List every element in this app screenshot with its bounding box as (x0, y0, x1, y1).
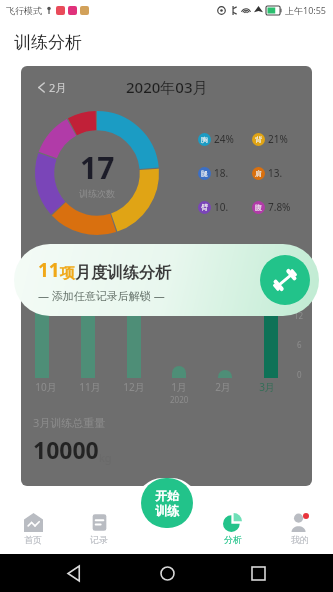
button[interactable]: 11 (14, 244, 319, 316)
button[interactable] (81, 280, 95, 378)
button[interactable]: 2月 (33, 76, 71, 99)
staticText: 臂 (201, 203, 208, 212)
staticText: 2月 (215, 380, 231, 394)
staticText: 2月 (49, 80, 67, 95)
staticText: 10. (214, 200, 229, 214)
button[interactable]: 开始训练 (260, 255, 310, 305)
staticText: 0 (297, 369, 302, 380)
staticText: 项 (60, 264, 75, 283)
button[interactable] (218, 370, 232, 378)
staticText: 胸 (201, 135, 208, 144)
button[interactable]: Back (58, 556, 92, 590)
button[interactable]: 首页 (0, 504, 66, 554)
staticText: 7.8% (268, 200, 291, 214)
button[interactable]: 我的 (266, 504, 333, 554)
staticText: 17 (80, 147, 115, 188)
staticText: 18 (294, 280, 304, 291)
button[interactable]: 开始 (141, 478, 193, 528)
staticText: 肩 (255, 169, 262, 178)
staticText: 6 (297, 339, 302, 350)
staticText: 腹 (255, 203, 262, 212)
button[interactable]: 记录 (66, 504, 132, 554)
staticText: 腿 (201, 169, 208, 178)
staticText: — 添加任意记录后解锁 — (38, 288, 165, 303)
staticText: 10000 (33, 434, 99, 465)
button[interactable]: Home (150, 556, 184, 590)
staticText: 分析 (224, 534, 242, 545)
staticText: 18. (214, 166, 229, 180)
button[interactable] (35, 283, 49, 378)
staticText: 训练分析 (14, 32, 82, 53)
staticText: 10月 (35, 380, 57, 394)
staticText: 开始 (155, 488, 179, 503)
staticText: 月度训练分析 (75, 263, 171, 283)
button[interactable]: Recents (241, 556, 275, 590)
staticText: 我的 (291, 534, 309, 545)
button[interactable] (172, 366, 186, 378)
staticText: 上午10:55 (285, 4, 327, 16)
staticText: 2020 (170, 394, 189, 405)
staticText: 首页 (24, 534, 42, 545)
staticText: 24% (214, 132, 234, 146)
staticText: 背 (255, 135, 262, 144)
staticText: 3月 (259, 380, 275, 394)
staticText: 12月 (123, 380, 145, 394)
staticText: 11月 (79, 380, 101, 394)
staticText: 2020年03月 (126, 77, 208, 97)
staticText: 1月 (171, 380, 187, 394)
button[interactable] (127, 285, 141, 378)
staticText: 3月训练总重量 (33, 415, 106, 430)
staticText: 11 (38, 257, 60, 283)
staticText: 12 (294, 310, 304, 321)
staticText: 13. (268, 166, 283, 180)
staticText: 训练 (155, 503, 179, 518)
button[interactable] (264, 294, 278, 378)
button[interactable]: 分析 (199, 504, 266, 554)
staticText: 21% (268, 132, 288, 146)
staticText: 训练次数 (79, 188, 115, 199)
staticText: 记录 (90, 534, 108, 545)
staticText: 飞行模式 (6, 5, 42, 16)
